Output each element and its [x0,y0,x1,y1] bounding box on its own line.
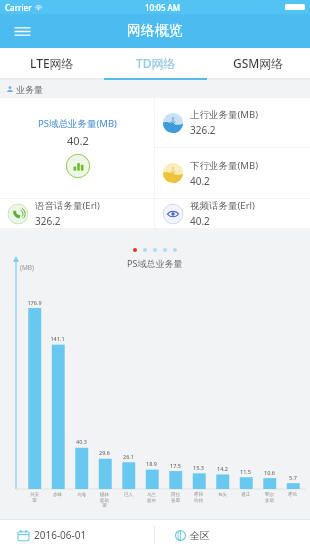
staticText: PS域总业务量(MB) [38,117,117,130]
staticText: 40.2 [67,133,89,148]
button[interactable]: 上行业务量(MB) [155,98,310,147]
staticText: 语音话务量(Erl) [35,199,100,212]
staticText: 141.1 [50,335,65,342]
staticText: 326.2 [35,214,61,228]
button[interactable] [163,248,167,252]
button[interactable]: 2016-06-01 [0,520,154,550]
staticText: 17.5 [170,462,181,469]
staticText: 全区 [190,529,210,542]
staticText: 通辽 [241,492,250,498]
button[interactable] [173,248,177,252]
staticText: 乌兰 察布 [147,492,156,503]
staticText: PS域总业务量 [127,257,183,269]
staticText: 阿拉 善盟 [171,492,180,503]
staticText: 14.2 [217,465,228,472]
button[interactable]: 全区 [155,520,310,550]
staticText: 巴人 [124,492,133,498]
button[interactable]: LTE网络 [0,48,104,78]
button[interactable] [153,248,157,252]
staticText: 下行业务量(MB) [190,159,258,172]
button[interactable]: PS域总业务量(MB) [0,98,154,198]
staticText: 网络概览 [127,22,183,40]
staticText: 10:05 AM [145,2,181,13]
staticText: 锡林 郭勒 盟 [100,492,109,508]
staticText: 10.6 [264,469,275,476]
staticText: 176.9 [27,299,42,306]
staticText: 上行业务量(MB) [190,108,258,121]
button[interactable]: GSM网络 [207,48,310,78]
button[interactable]: TD网络 [104,48,207,78]
staticText: 包头 [218,492,227,498]
staticText: 26.1 [123,453,134,460]
staticText: 29.6 [99,449,110,456]
button[interactable]: Menu [8,17,36,45]
staticText: 40.2 [190,174,210,188]
staticText: 乌海 [77,492,86,498]
staticText: TD网络 [136,55,176,71]
staticText: (MB) [20,263,35,272]
button[interactable]: 视频话务量(Erl) [155,199,310,228]
staticText: 5.7 [289,474,297,481]
staticText: 呼和 浩特 [194,492,203,503]
staticText: 18.9 [146,460,157,467]
staticText: 呼伦 [288,492,297,498]
button[interactable] [143,248,147,252]
staticText: 兴安 盟 [30,492,39,503]
staticText: 15.3 [193,464,204,471]
staticText: GSM网络 [233,55,284,71]
staticText: Carrier [5,2,32,13]
staticText: 视频话务量(Erl) [190,199,255,212]
staticText: 鄂尔 多斯 [265,492,274,503]
button[interactable]: 语音话务量(Erl) [0,199,154,228]
staticText: 40.3 [76,438,87,445]
staticText: LTE网络 [30,55,74,71]
button[interactable]: 下行业务量(MB) [155,148,310,198]
staticText: 40.2 [190,214,210,228]
staticText: 赤峰 [53,492,62,498]
button[interactable] [133,248,137,252]
staticText: 11.5 [240,468,251,475]
staticText: 326.2 [190,123,216,137]
staticText: 业务量 [16,84,43,95]
staticText: 2016-06-01 [34,528,87,542]
